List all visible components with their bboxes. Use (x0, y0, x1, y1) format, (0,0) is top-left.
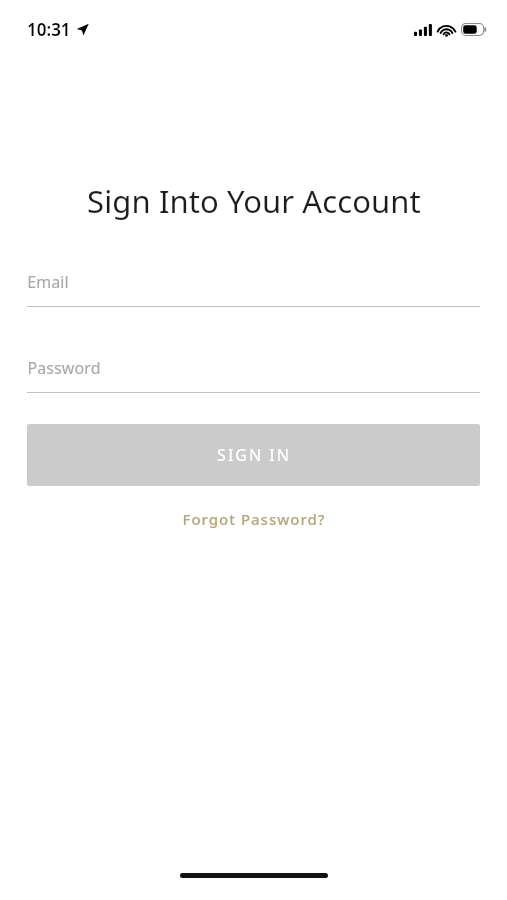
button[interactable]: Password (0, 357, 507, 393)
staticText: Forgot Password? (182, 509, 326, 529)
staticText: Password (27, 357, 101, 379)
staticText: 10:31 (27, 18, 71, 41)
staticText: Sign Into Your Account (87, 180, 421, 222)
button[interactable]: Email (0, 271, 507, 307)
button[interactable]: SIGN IN (27, 424, 480, 486)
staticText: Email (27, 271, 69, 293)
staticText: SIGN IN (217, 444, 291, 466)
button[interactable]: Forgot Password? (170, 505, 338, 533)
